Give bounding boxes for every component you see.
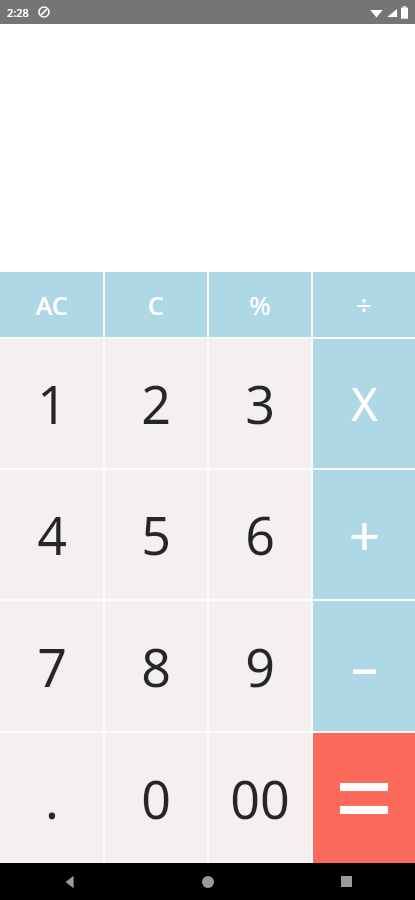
staticText: 3 (245, 368, 275, 439)
button[interactable]: 1 (0, 339, 103, 468)
button[interactable]: Back (50, 863, 90, 900)
staticText: C (148, 288, 164, 322)
staticText: 4 (37, 499, 67, 570)
button[interactable]: . (0, 733, 103, 863)
staticText: 1 (37, 368, 67, 439)
button[interactable]: C (105, 272, 207, 337)
button[interactable]: 0 (105, 733, 207, 863)
button[interactable]: 9 (209, 601, 311, 731)
staticText: 6 (245, 499, 275, 570)
button[interactable]: 4 (0, 470, 103, 599)
button[interactable]: – (313, 601, 415, 731)
staticText: 9 (245, 631, 275, 702)
button[interactable]: Recents (326, 863, 366, 900)
button[interactable]: 3 (209, 339, 311, 468)
button[interactable]: 2 (105, 339, 207, 468)
button[interactable]: % (209, 272, 311, 337)
button[interactable]: 00 (209, 733, 311, 863)
staticText: % (249, 287, 271, 322)
button[interactable]: AC (0, 272, 103, 337)
staticText: 0 (141, 763, 171, 834)
staticText: 2:28 (7, 5, 29, 20)
staticText: 7 (37, 631, 67, 702)
staticText: . (45, 763, 59, 834)
staticText: 8 (141, 631, 171, 702)
staticText: X (351, 373, 378, 434)
button[interactable]: Equals (313, 733, 415, 863)
button[interactable]: + (313, 470, 415, 599)
staticText: – (351, 629, 378, 703)
button[interactable]: Home (188, 863, 228, 900)
staticText: + (349, 498, 380, 572)
staticText: ÷ (356, 286, 372, 323)
staticText: 5 (141, 499, 171, 570)
staticText: AC (36, 288, 68, 322)
staticText: 00 (230, 763, 290, 834)
button[interactable]: 8 (105, 601, 207, 731)
button[interactable]: 5 (105, 470, 207, 599)
button[interactable]: 7 (0, 601, 103, 731)
button[interactable]: 6 (209, 470, 311, 599)
button[interactable]: X (313, 339, 415, 468)
staticText: 2 (141, 368, 171, 439)
button[interactable]: ÷ (313, 272, 415, 337)
